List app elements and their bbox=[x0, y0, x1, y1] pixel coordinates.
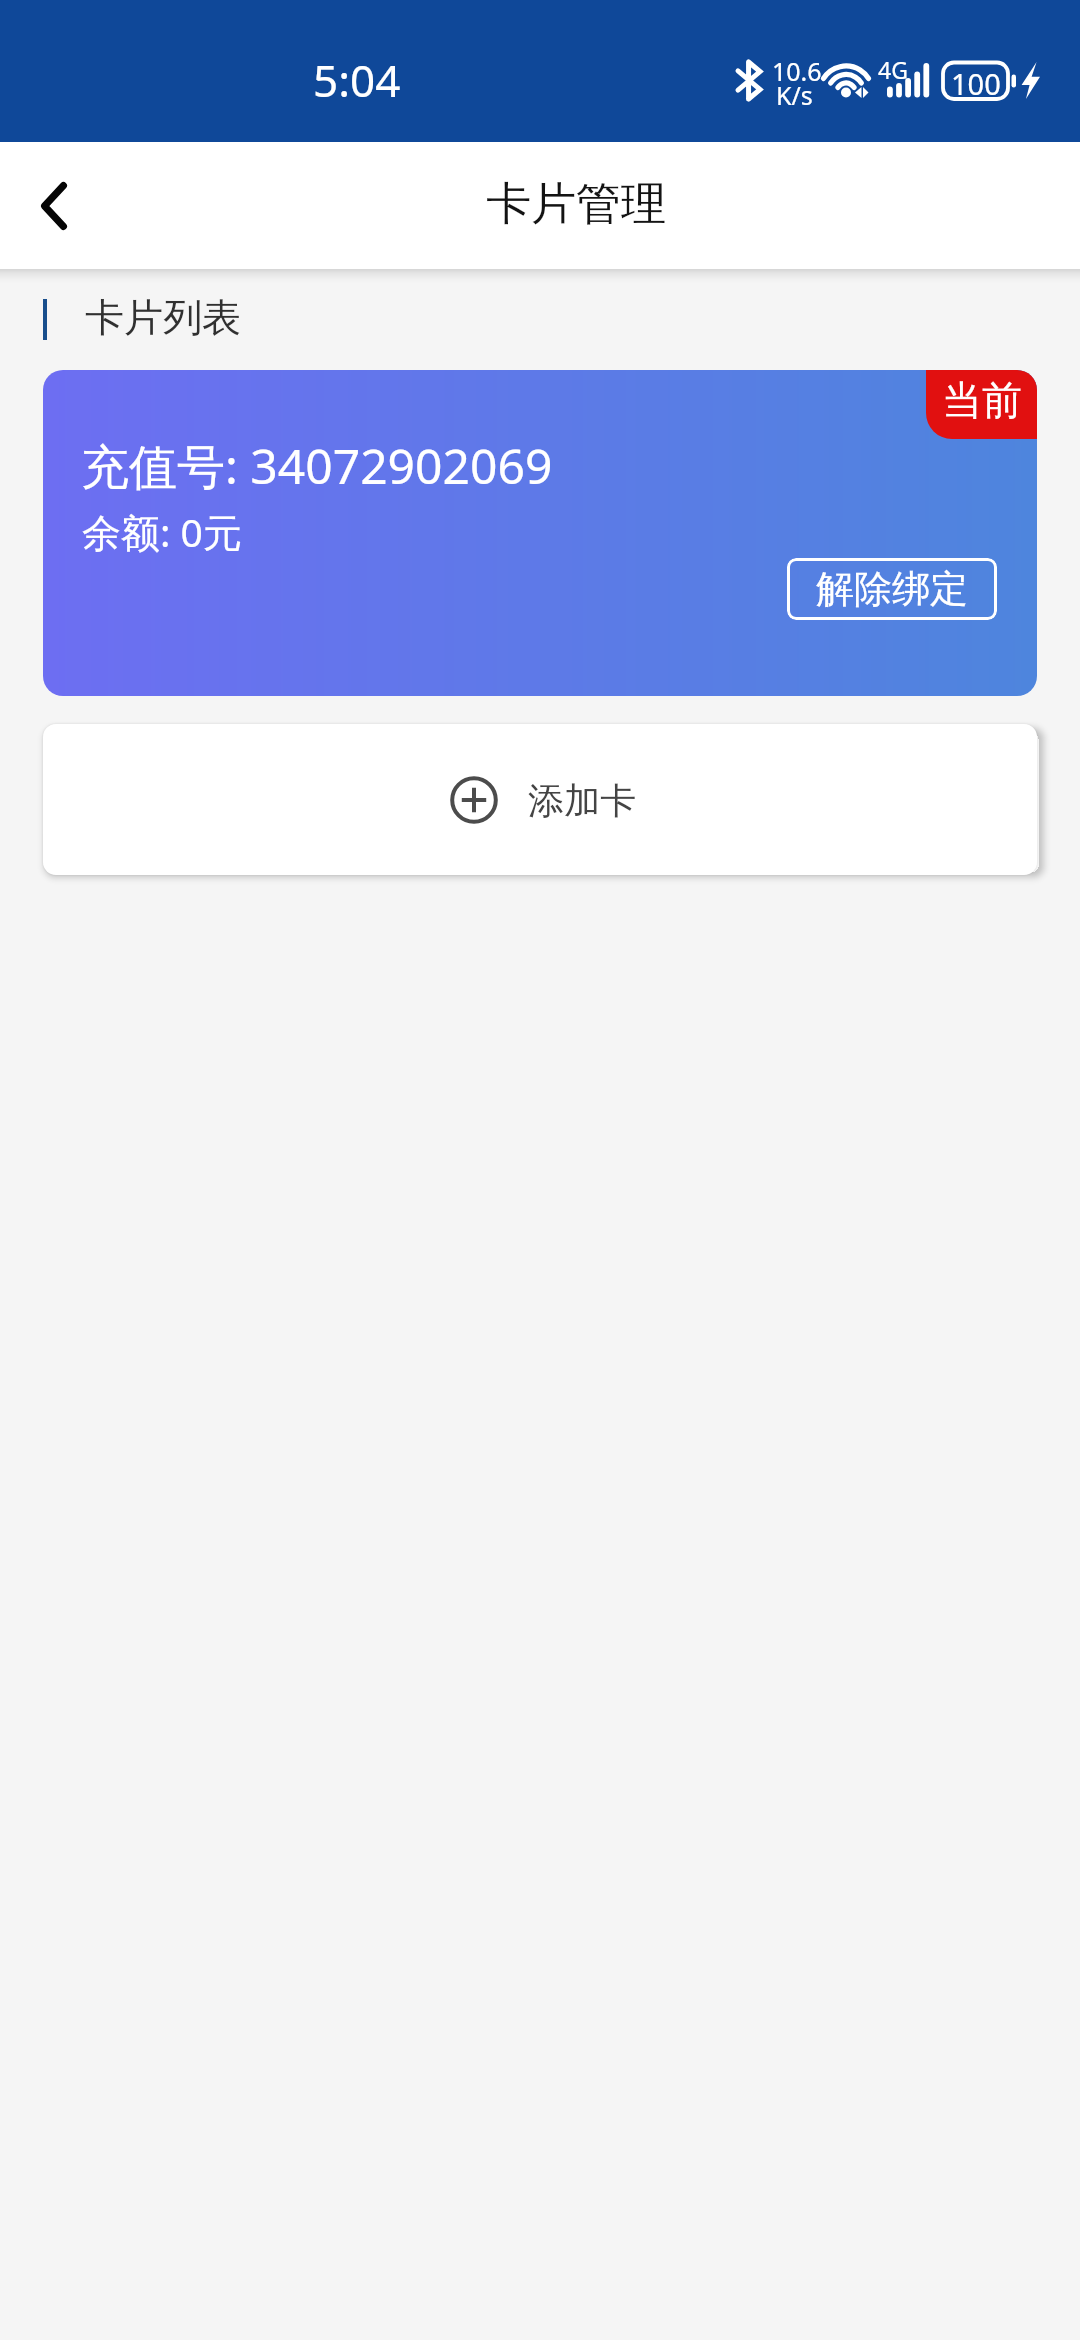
staticText: 余额: 0元 bbox=[82, 505, 242, 558]
staticText: K/s bbox=[776, 78, 813, 112]
staticText: 充值号: 34072902069 bbox=[81, 433, 553, 499]
button[interactable]: Back bbox=[0, 150, 110, 262]
staticText: 10.6 bbox=[772, 54, 822, 88]
staticText: 5:04 bbox=[313, 50, 401, 110]
staticText: 4G bbox=[878, 54, 908, 85]
staticText: 100 bbox=[951, 64, 1001, 103]
button[interactable]: 添加卡 bbox=[43, 724, 1037, 875]
staticText: 卡片列表 bbox=[85, 293, 241, 342]
staticText: 解除绑定 bbox=[816, 565, 968, 613]
staticText: 当前 bbox=[942, 375, 1022, 425]
staticText: 添加卡 bbox=[528, 778, 636, 823]
button[interactable]: 当前 bbox=[43, 370, 1037, 696]
staticText: 卡片管理 bbox=[486, 176, 666, 233]
button[interactable]: 解除绑定 bbox=[787, 558, 997, 620]
